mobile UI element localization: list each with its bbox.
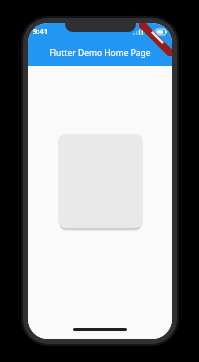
- staticText: 9:41: [33, 26, 48, 36]
- other: Debug banner: [139, 23, 172, 56]
- staticText: Flutter Demo Home Page: [49, 47, 151, 59]
